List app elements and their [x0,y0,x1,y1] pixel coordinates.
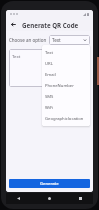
button[interactable]: Text [42,47,90,58]
button[interactable]: URL [42,58,90,69]
staticText: SMS [45,94,54,100]
button[interactable]: Recent apps [77,195,84,202]
staticText: Geographiclocation [45,116,84,122]
button[interactable]: Email [42,69,90,80]
staticText: Email [45,72,56,78]
staticText: Text [45,50,54,56]
button[interactable]: PhoneNumber [42,80,90,91]
button[interactable]: Text [49,35,90,45]
staticText: Text [12,53,21,59]
staticText: Generate [40,181,59,187]
button[interactable]: Generate [9,179,90,188]
button[interactable]: Navigate up [8,19,19,30]
staticText: WiFi [45,105,54,111]
button[interactable]: Geographiclocation [42,113,90,124]
button[interactable]: Home [46,195,53,202]
staticText: Generate QR Code [22,21,79,29]
button[interactable]: SMS [42,91,90,102]
staticText: URL [45,61,53,67]
button[interactable]: Back [15,195,22,202]
staticText: Choose an option [9,37,47,43]
staticText: Text [52,37,61,43]
button[interactable]: WiFi [42,102,90,113]
button[interactable]: Text [9,49,46,87]
staticText: PhoneNumber [45,83,74,89]
